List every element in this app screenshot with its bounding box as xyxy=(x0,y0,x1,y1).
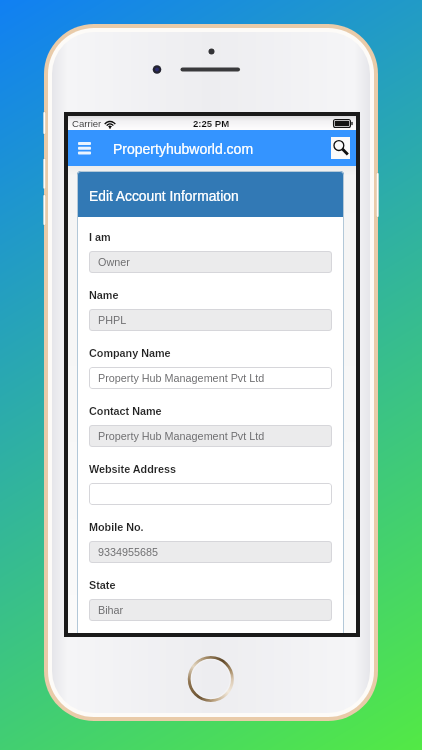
button[interactable]: Property Hub Management Pvt Ltd xyxy=(89,367,332,389)
staticText: Property Hub Management Pvt Ltd xyxy=(98,372,265,384)
staticText: Name xyxy=(89,289,119,301)
staticText: Website Address xyxy=(89,463,177,475)
button[interactable]: Bihar xyxy=(89,599,332,621)
button[interactable]: Search xyxy=(331,137,350,159)
staticText: Bihar xyxy=(98,604,124,616)
staticText: I am xyxy=(89,231,111,243)
button[interactable]: 9334955685 xyxy=(89,541,332,563)
staticText: Edit Account Information xyxy=(89,189,239,204)
button[interactable] xyxy=(89,483,332,505)
staticText: 9334955685 xyxy=(98,546,159,558)
staticText: Company Name xyxy=(89,347,171,359)
staticText: State xyxy=(89,579,116,591)
staticText: Owner xyxy=(98,256,130,268)
staticText: PHPL xyxy=(98,314,127,326)
button[interactable]: Property Hub Management Pvt Ltd xyxy=(89,425,332,447)
staticText: Carrier xyxy=(72,118,102,129)
button[interactable]: PHPL xyxy=(89,309,332,331)
staticText: Propertyhubworld.com xyxy=(113,141,254,157)
staticText: Contact Name xyxy=(89,405,162,417)
staticText: 2:25 PM xyxy=(193,118,230,129)
staticText: Mobile No. xyxy=(89,521,144,533)
button[interactable]: Owner xyxy=(89,251,332,273)
button[interactable]: Menu xyxy=(72,134,96,162)
staticText: Property Hub Management Pvt Ltd xyxy=(98,430,265,442)
